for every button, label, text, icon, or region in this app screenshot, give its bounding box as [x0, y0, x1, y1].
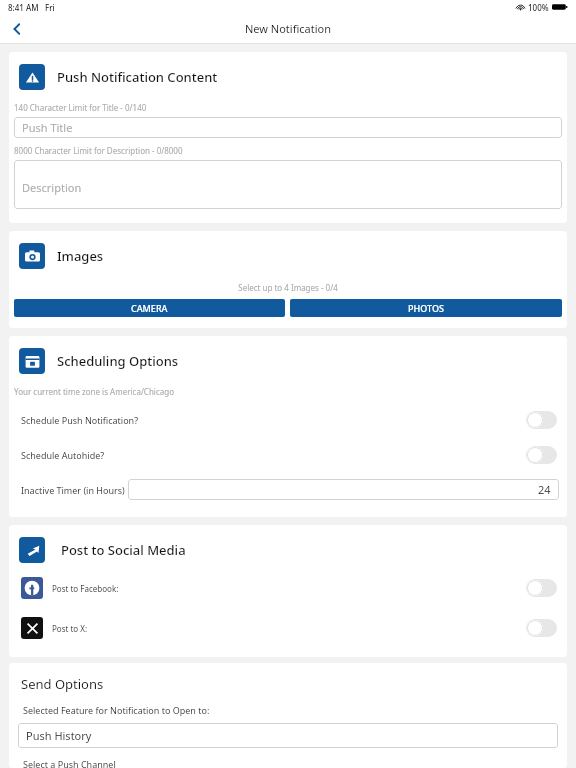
- button[interactable]: Push Title: [14, 117, 562, 138]
- staticText: Send Options: [21, 675, 104, 693]
- staticText: 24: [538, 482, 551, 497]
- button[interactable]: Back: [0, 14, 34, 43]
- staticText: Select a Push Channel: [23, 758, 116, 768]
- staticText: Fri: [45, 2, 55, 13]
- button[interactable]: Schedule Autohide?: [9, 443, 567, 467]
- staticText: Push Title: [22, 120, 73, 135]
- staticText: PHOTOS: [408, 302, 444, 314]
- button[interactable]: Toggle: [526, 579, 557, 597]
- button[interactable]: Push History: [18, 723, 558, 748]
- staticText: Post to X:: [52, 623, 88, 634]
- button[interactable]: Post to Facebook:: [9, 576, 567, 600]
- staticText: 8:41 AM: [8, 2, 39, 13]
- staticText: Push History: [26, 728, 92, 743]
- staticText: Selected Feature for Notification to Ope…: [23, 704, 210, 716]
- staticText: CAMERA: [131, 302, 168, 314]
- staticText: Your current time zone is America/Chicag…: [14, 386, 175, 397]
- button[interactable]: 24: [128, 479, 559, 500]
- staticText: Select up to 4 Images - 0/4: [9, 282, 567, 293]
- staticText: 8000 Character Limit for Description - 0…: [14, 145, 183, 156]
- staticText: Schedule Autohide?: [21, 449, 105, 461]
- button[interactable]: Description: [14, 160, 562, 209]
- staticText: Images: [57, 247, 104, 265]
- staticText: Push Notification Content: [57, 68, 218, 86]
- staticText: Schedule Push Notification?: [21, 414, 139, 426]
- staticText: 140 Character Limit for Title - 0/140: [14, 102, 147, 113]
- staticText: Scheduling Options: [57, 352, 179, 370]
- staticText: New Notification: [245, 21, 332, 36]
- staticText: Post to Facebook:: [52, 583, 119, 594]
- staticText: 100%: [528, 2, 549, 13]
- staticText: Description: [22, 180, 82, 195]
- staticText: Inactive Timer (in Hours): [21, 484, 125, 496]
- button[interactable]: Schedule Push Notification?: [9, 408, 567, 432]
- button[interactable]: Toggle: [526, 619, 557, 637]
- button[interactable]: CAMERA: [14, 299, 285, 317]
- button[interactable]: Toggle: [526, 446, 557, 464]
- button[interactable]: Post to X:: [9, 616, 567, 640]
- button[interactable]: PHOTOS: [290, 299, 562, 317]
- button[interactable]: Toggle: [526, 411, 557, 429]
- staticText: Post to Social Media: [61, 541, 186, 559]
